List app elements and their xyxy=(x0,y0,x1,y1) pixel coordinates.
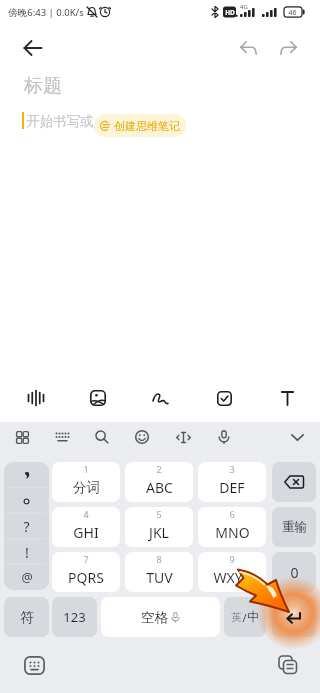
button[interactable] xyxy=(234,34,262,62)
button[interactable]: 符 xyxy=(4,597,49,637)
button[interactable] xyxy=(272,597,316,637)
button[interactable] xyxy=(212,425,236,449)
button[interactable] xyxy=(272,650,304,680)
button[interactable]: 空格 xyxy=(101,597,220,637)
button[interactable]: 6 xyxy=(198,507,266,547)
button[interactable]: 3 xyxy=(198,462,266,502)
button[interactable]: 8 xyxy=(125,552,193,592)
button[interactable]: 创建思维笔记 xyxy=(94,114,186,137)
button[interactable] xyxy=(277,383,297,413)
button[interactable] xyxy=(26,383,46,413)
button[interactable]: ? xyxy=(4,462,49,590)
staticText: 8 xyxy=(156,553,162,565)
staticText: 傍晚6:43 | 0.0K/s xyxy=(8,6,84,19)
staticText: 5 xyxy=(156,508,162,520)
button[interactable]: 0 xyxy=(272,552,316,592)
button[interactable]: 5 xyxy=(125,507,193,547)
staticText: 123 xyxy=(63,608,86,626)
button[interactable] xyxy=(272,462,316,502)
button[interactable]: 1 xyxy=(52,462,120,502)
staticText: 4G xyxy=(240,3,248,11)
staticText: HD xyxy=(225,8,235,17)
staticText: 1 xyxy=(83,463,89,475)
button[interactable]: 4 xyxy=(52,507,120,547)
button[interactable] xyxy=(171,425,195,449)
staticText: JKL xyxy=(149,523,169,542)
staticText: PQRS xyxy=(68,568,104,587)
staticText: 46 xyxy=(288,8,297,18)
button[interactable] xyxy=(18,32,50,64)
button[interactable] xyxy=(18,650,50,680)
staticText: 6 xyxy=(229,508,235,520)
button[interactable] xyxy=(214,383,234,413)
button[interactable] xyxy=(90,425,114,449)
staticText: 2 xyxy=(156,463,162,475)
button[interactable]: 重输 xyxy=(272,507,316,547)
button[interactable]: 123 xyxy=(52,597,97,637)
staticText: MNO xyxy=(215,523,250,542)
staticText: 4 xyxy=(83,508,89,520)
button[interactable]: 2 xyxy=(125,462,193,502)
staticText: 3 xyxy=(229,463,235,475)
button[interactable]: 7 xyxy=(52,552,120,592)
staticText: 开始书写或 xyxy=(26,113,94,130)
staticText: DEF xyxy=(219,478,245,497)
button[interactable] xyxy=(285,425,309,449)
staticText: WXYZ xyxy=(213,568,251,587)
staticText: 符 xyxy=(20,609,34,626)
staticText: ! xyxy=(25,543,29,562)
button[interactable] xyxy=(10,425,34,449)
button[interactable] xyxy=(274,34,302,62)
staticText: 7 xyxy=(83,553,89,565)
staticText: 重输 xyxy=(282,519,307,535)
staticText: 空格 xyxy=(141,609,168,626)
staticText: @ xyxy=(21,569,33,586)
staticText: TUV xyxy=(146,568,173,587)
staticText: 标题 xyxy=(24,74,62,98)
staticText: 9 xyxy=(229,553,235,565)
button[interactable] xyxy=(88,383,108,413)
staticText: ? xyxy=(23,517,30,536)
staticText: 分词 xyxy=(73,479,100,496)
button[interactable] xyxy=(150,383,170,413)
staticText: 英 xyxy=(231,611,242,624)
button[interactable]: 9 xyxy=(198,552,266,592)
staticText: ABC xyxy=(146,478,173,497)
staticText: 创建思维笔记 xyxy=(114,119,180,133)
button[interactable] xyxy=(50,425,74,449)
staticText: / xyxy=(242,610,247,625)
staticText: 0 xyxy=(290,563,299,582)
staticText: 中 xyxy=(247,609,260,625)
button[interactable]: 英 xyxy=(224,597,266,637)
button[interactable] xyxy=(130,425,154,449)
staticText: GHI xyxy=(73,523,99,542)
